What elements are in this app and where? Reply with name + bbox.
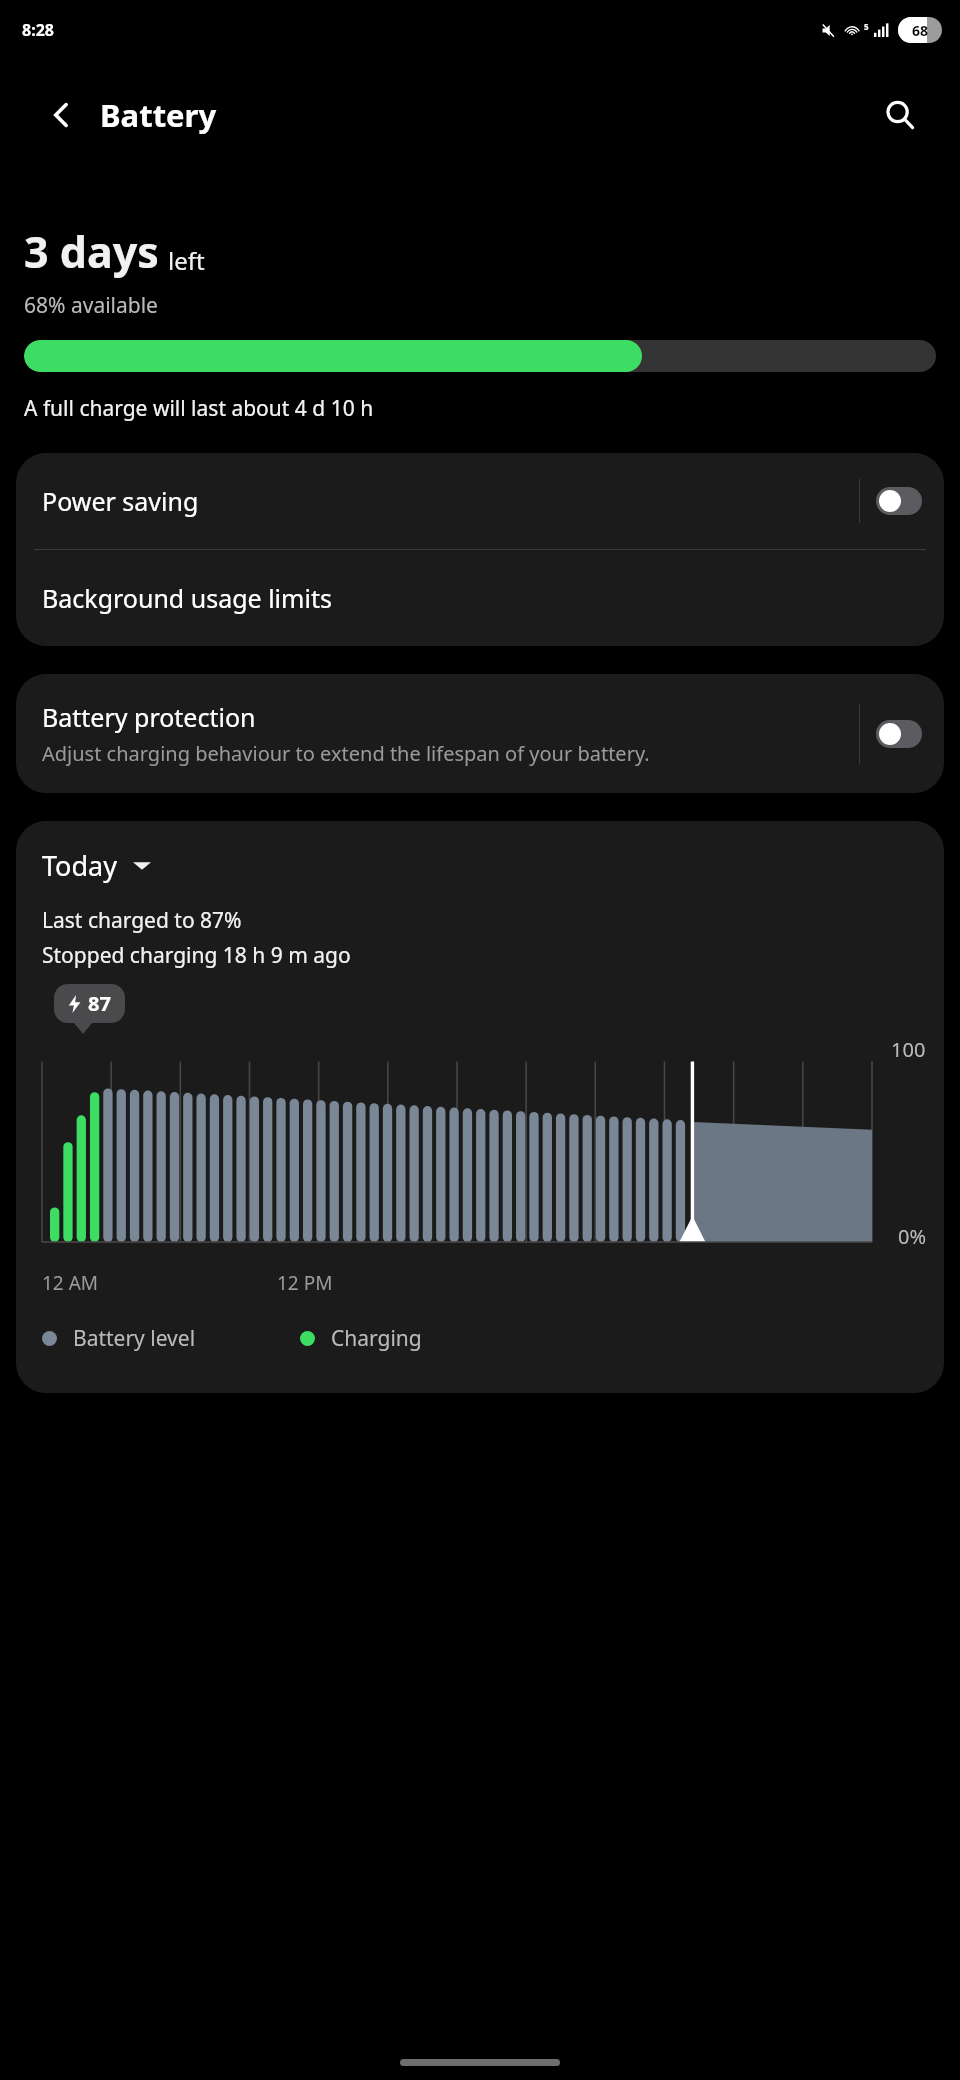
staticText: 12 PM bbox=[277, 1270, 333, 1296]
button[interactable]: Search bbox=[872, 87, 928, 143]
staticText: 5 bbox=[864, 21, 869, 32]
staticText: 68% available bbox=[24, 291, 158, 320]
staticText: 87 bbox=[88, 990, 111, 1017]
staticText: Charging bbox=[331, 1324, 422, 1353]
staticText: Adjust charging behaviour to extend the … bbox=[42, 740, 650, 767]
staticText: Today bbox=[42, 847, 117, 884]
staticText: Battery level bbox=[73, 1324, 196, 1353]
staticText: Power saving bbox=[42, 484, 859, 518]
button[interactable]: Today bbox=[42, 847, 151, 884]
button[interactable]: Power saving bbox=[16, 453, 944, 549]
staticText: Last charged to 87% bbox=[42, 906, 242, 935]
staticText: 0% bbox=[897, 1223, 926, 1250]
staticText: 12 AM bbox=[42, 1270, 99, 1296]
staticText: 68 bbox=[912, 21, 929, 40]
button[interactable]: Toggle bbox=[876, 720, 922, 748]
staticText: Battery bbox=[100, 94, 217, 136]
button[interactable]: Back bbox=[34, 87, 90, 143]
staticText: Background usage limits bbox=[42, 581, 332, 615]
button[interactable]: Toggle bbox=[876, 487, 922, 515]
button[interactable]: Background usage limits bbox=[16, 550, 944, 646]
staticText: Battery protection bbox=[42, 700, 256, 734]
staticText: 3 days bbox=[24, 222, 159, 281]
button[interactable]: Battery protection bbox=[16, 674, 944, 793]
staticText: A full charge will last about 4 d 10 h bbox=[24, 394, 374, 423]
staticText: 8:28 bbox=[22, 19, 54, 41]
staticText: 100 bbox=[891, 1036, 926, 1063]
staticText: left bbox=[168, 244, 205, 277]
staticText: Stopped charging 18 h 9 m ago bbox=[42, 941, 351, 970]
